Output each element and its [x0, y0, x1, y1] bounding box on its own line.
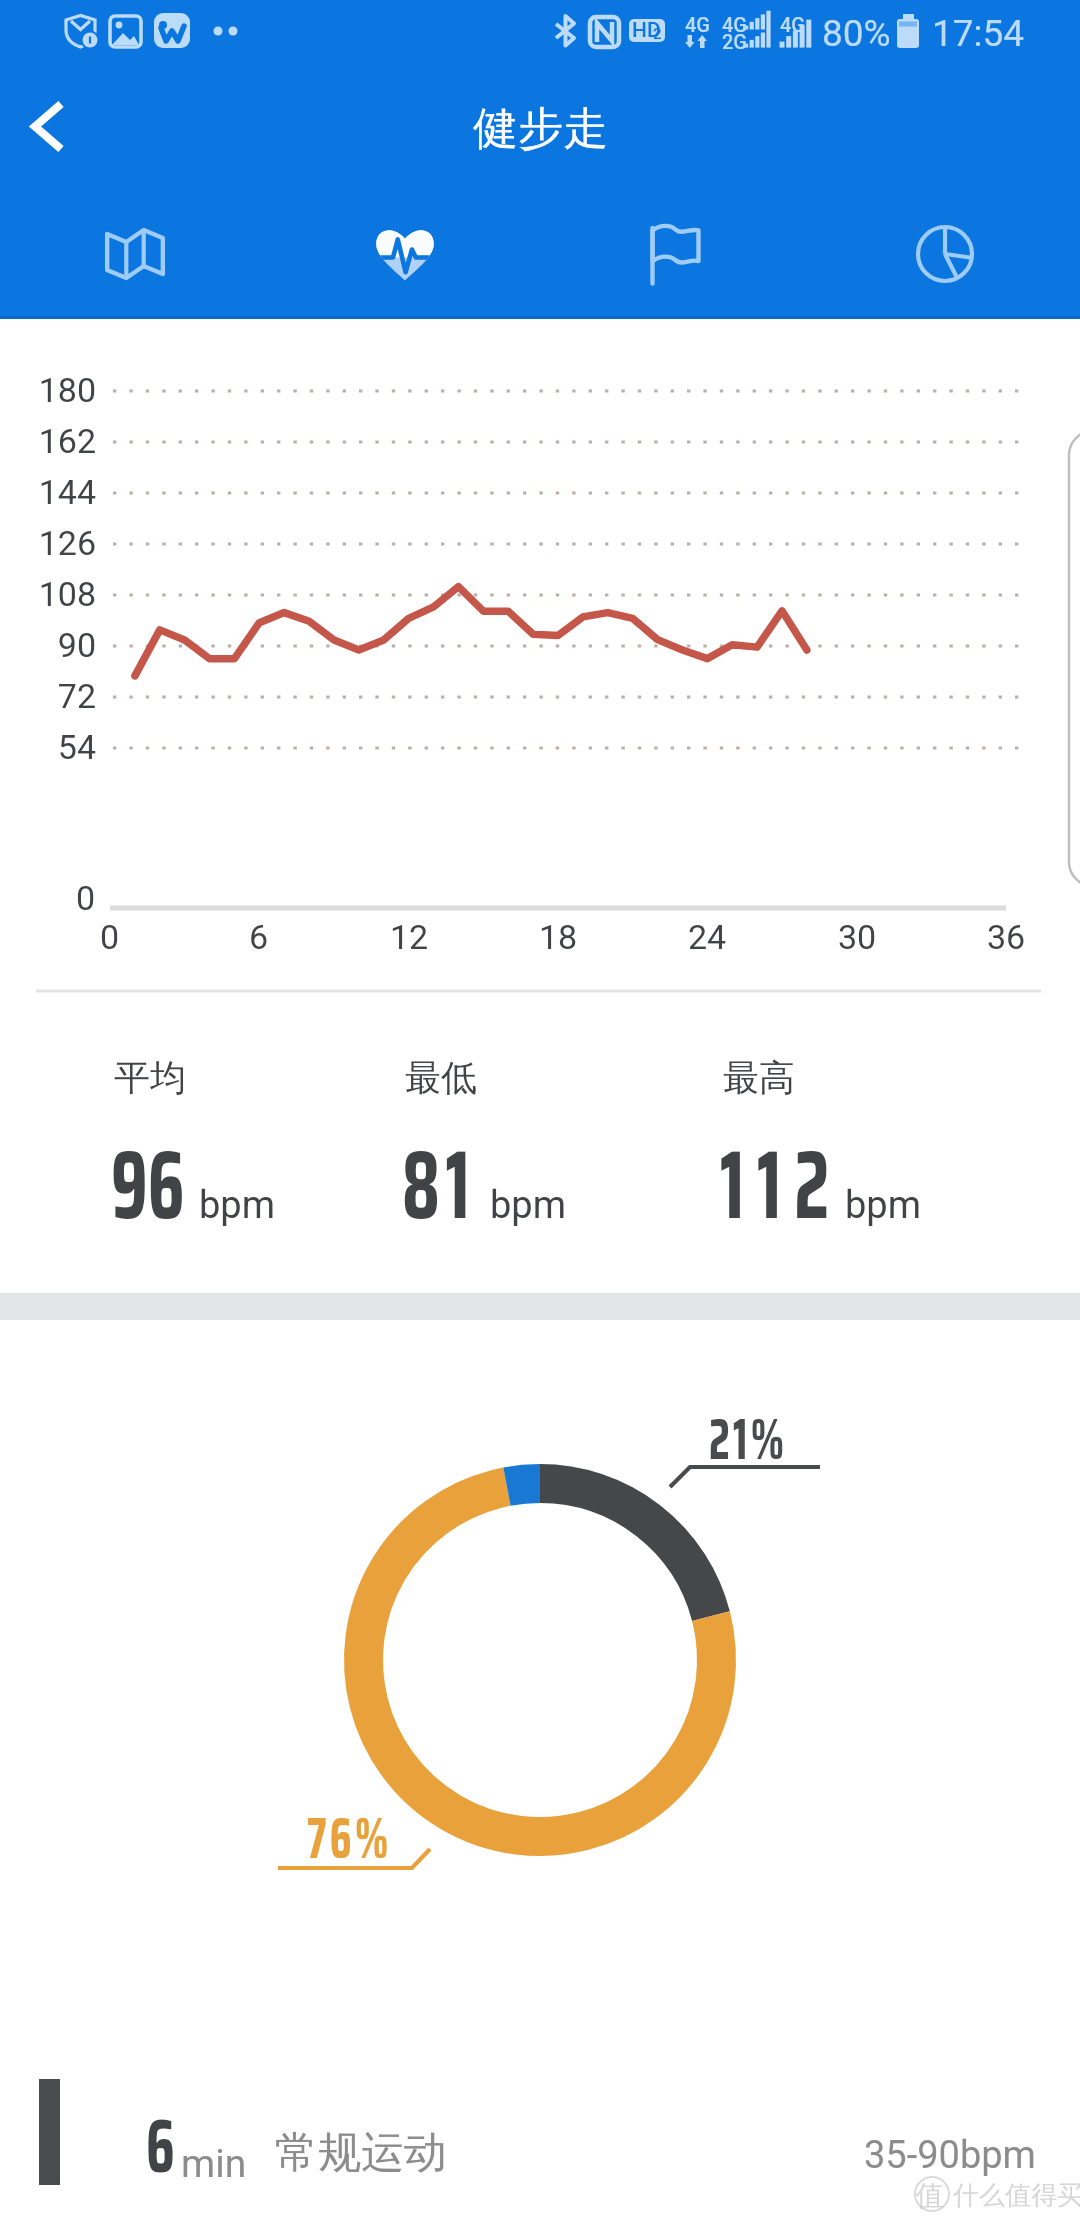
staticText: 76% [307, 1793, 392, 1883]
staticText: 6 [249, 917, 269, 957]
staticText: 90 [57, 625, 96, 665]
staticText: 12 [390, 917, 429, 957]
staticText: 18 [539, 917, 578, 957]
staticText: 0 [76, 878, 96, 918]
staticText: 2 [653, 25, 662, 43]
button[interactable]: Statistics [810, 204, 1080, 304]
button[interactable]: Heart rate [270, 204, 540, 304]
staticText: 健步走 [473, 101, 608, 158]
staticText: 最低 [405, 1055, 477, 1100]
staticText: 4G [780, 13, 805, 36]
staticText: 108 [38, 574, 96, 614]
button[interactable]: Back [0, 80, 95, 172]
staticText: HD [632, 18, 661, 43]
staticText: 2G [722, 30, 747, 53]
staticText: bpm [845, 1183, 921, 1228]
staticText: 值 [916, 2178, 944, 2213]
button[interactable]: Map [0, 204, 270, 304]
staticText: 81 [402, 1109, 476, 1260]
staticText: 4G [722, 13, 747, 36]
staticText: 35-90bpm [864, 2133, 1036, 2178]
staticText: 162 [38, 421, 96, 461]
staticText: 4G [685, 13, 710, 36]
staticText: 36 [987, 917, 1026, 957]
button[interactable]: Flag [540, 204, 810, 304]
staticText: 24 [688, 917, 727, 957]
staticText: 0 [100, 917, 120, 957]
staticText: min [181, 2141, 247, 2187]
staticText: 72 [57, 676, 96, 716]
staticText: 21% [709, 1394, 788, 1484]
staticText: 180 [38, 370, 96, 410]
staticText: 常规运动 [275, 2126, 447, 2180]
staticText: bpm [199, 1183, 275, 1228]
staticText: 96 [111, 1109, 185, 1260]
staticText: 112 [720, 1109, 842, 1260]
staticText: 什么值得买 [953, 2179, 1080, 2212]
staticText: 17:54 [932, 12, 1025, 55]
staticText: 6 [146, 2087, 175, 2205]
staticText: 80% [822, 12, 891, 55]
staticText: 126 [38, 523, 96, 563]
staticText: 平均 [114, 1055, 186, 1100]
staticText: bpm [490, 1183, 566, 1228]
staticText: 54 [57, 727, 96, 767]
staticText: 30 [838, 917, 877, 957]
staticText: 144 [38, 472, 96, 512]
staticText: 最高 [723, 1055, 795, 1100]
